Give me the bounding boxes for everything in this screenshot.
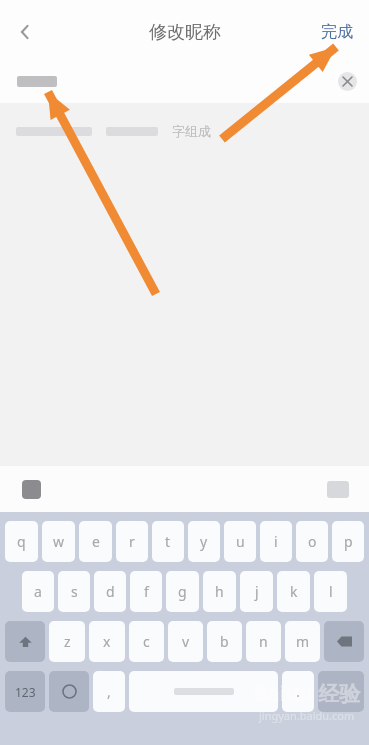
staticText: n (259, 632, 268, 651)
button[interactable]: . (282, 671, 314, 712)
staticText: g (178, 582, 187, 601)
staticText: w (53, 532, 65, 551)
staticText: l (329, 582, 333, 601)
staticText: x (103, 632, 111, 651)
button[interactable]: c (129, 621, 164, 662)
staticText: Baidu 经验 (253, 679, 361, 708)
staticText: j (255, 582, 259, 601)
button[interactable]: x (89, 621, 125, 662)
button[interactable]: v (168, 621, 203, 662)
button[interactable]: y (188, 521, 220, 562)
button[interactable]: Backspace (324, 621, 364, 662)
staticText: z (64, 632, 71, 651)
staticText: i (274, 532, 278, 551)
button[interactable]: o (296, 521, 328, 562)
button[interactable]: d (94, 571, 126, 612)
staticText: e (92, 532, 100, 551)
staticText: a (34, 582, 42, 601)
button[interactable]: h (203, 571, 236, 612)
button[interactable]: Space (129, 671, 278, 712)
button[interactable]: 完成 (305, 4, 369, 60)
staticText: 字组成 (172, 123, 211, 139)
staticText: , (107, 682, 111, 701)
staticText: p (344, 532, 353, 551)
button[interactable]: Clear (0, 60, 369, 103)
staticText: v (182, 632, 190, 651)
button[interactable]: 123 (5, 671, 45, 712)
staticText: . (296, 682, 300, 701)
staticText: 完成 (321, 22, 353, 42)
button[interactable]: r (116, 521, 148, 562)
button[interactable]: e (79, 521, 112, 562)
staticText: o (308, 532, 317, 551)
staticText: b (220, 632, 229, 651)
button[interactable]: , (93, 671, 125, 712)
staticText: q (17, 532, 26, 551)
staticText: m (296, 632, 310, 651)
button[interactable]: t (152, 521, 184, 562)
staticText: d (106, 582, 115, 601)
button[interactable]: p (332, 521, 364, 562)
staticText: s (71, 582, 78, 601)
button[interactable]: w (42, 521, 75, 562)
button[interactable]: Clear (338, 72, 357, 91)
button[interactable]: l (314, 571, 347, 612)
staticText: 123 (15, 684, 36, 700)
button[interactable]: Emoji (49, 671, 89, 712)
button[interactable]: Back (0, 4, 50, 60)
button[interactable]: Keyboard settings (327, 481, 349, 498)
staticText: k (290, 582, 298, 601)
staticText: y (200, 532, 208, 551)
staticText: r (129, 532, 135, 551)
staticText: jingyan.baidu.com (259, 708, 355, 723)
button[interactable]: f (130, 571, 162, 612)
button[interactable]: i (260, 521, 292, 562)
staticText: u (236, 532, 245, 551)
staticText: 修改昵称 (149, 21, 221, 44)
button[interactable]: Keyboard menu (22, 480, 41, 499)
staticText: f (144, 582, 149, 601)
staticText: t (165, 532, 171, 551)
button[interactable]: z (49, 621, 85, 662)
button[interactable]: a (22, 571, 54, 612)
button[interactable]: s (58, 571, 90, 612)
staticText: h (215, 582, 224, 601)
button[interactable]: b (207, 621, 242, 662)
button[interactable]: m (285, 621, 320, 662)
button[interactable]: Shift (5, 621, 45, 662)
button[interactable]: q (5, 521, 38, 562)
staticText: c (143, 632, 150, 651)
button[interactable]: g (166, 571, 199, 612)
button[interactable]: n (246, 621, 281, 662)
button[interactable]: Enter (318, 671, 364, 712)
button[interactable]: u (224, 521, 256, 562)
button[interactable]: j (240, 571, 273, 612)
button[interactable]: k (277, 571, 310, 612)
